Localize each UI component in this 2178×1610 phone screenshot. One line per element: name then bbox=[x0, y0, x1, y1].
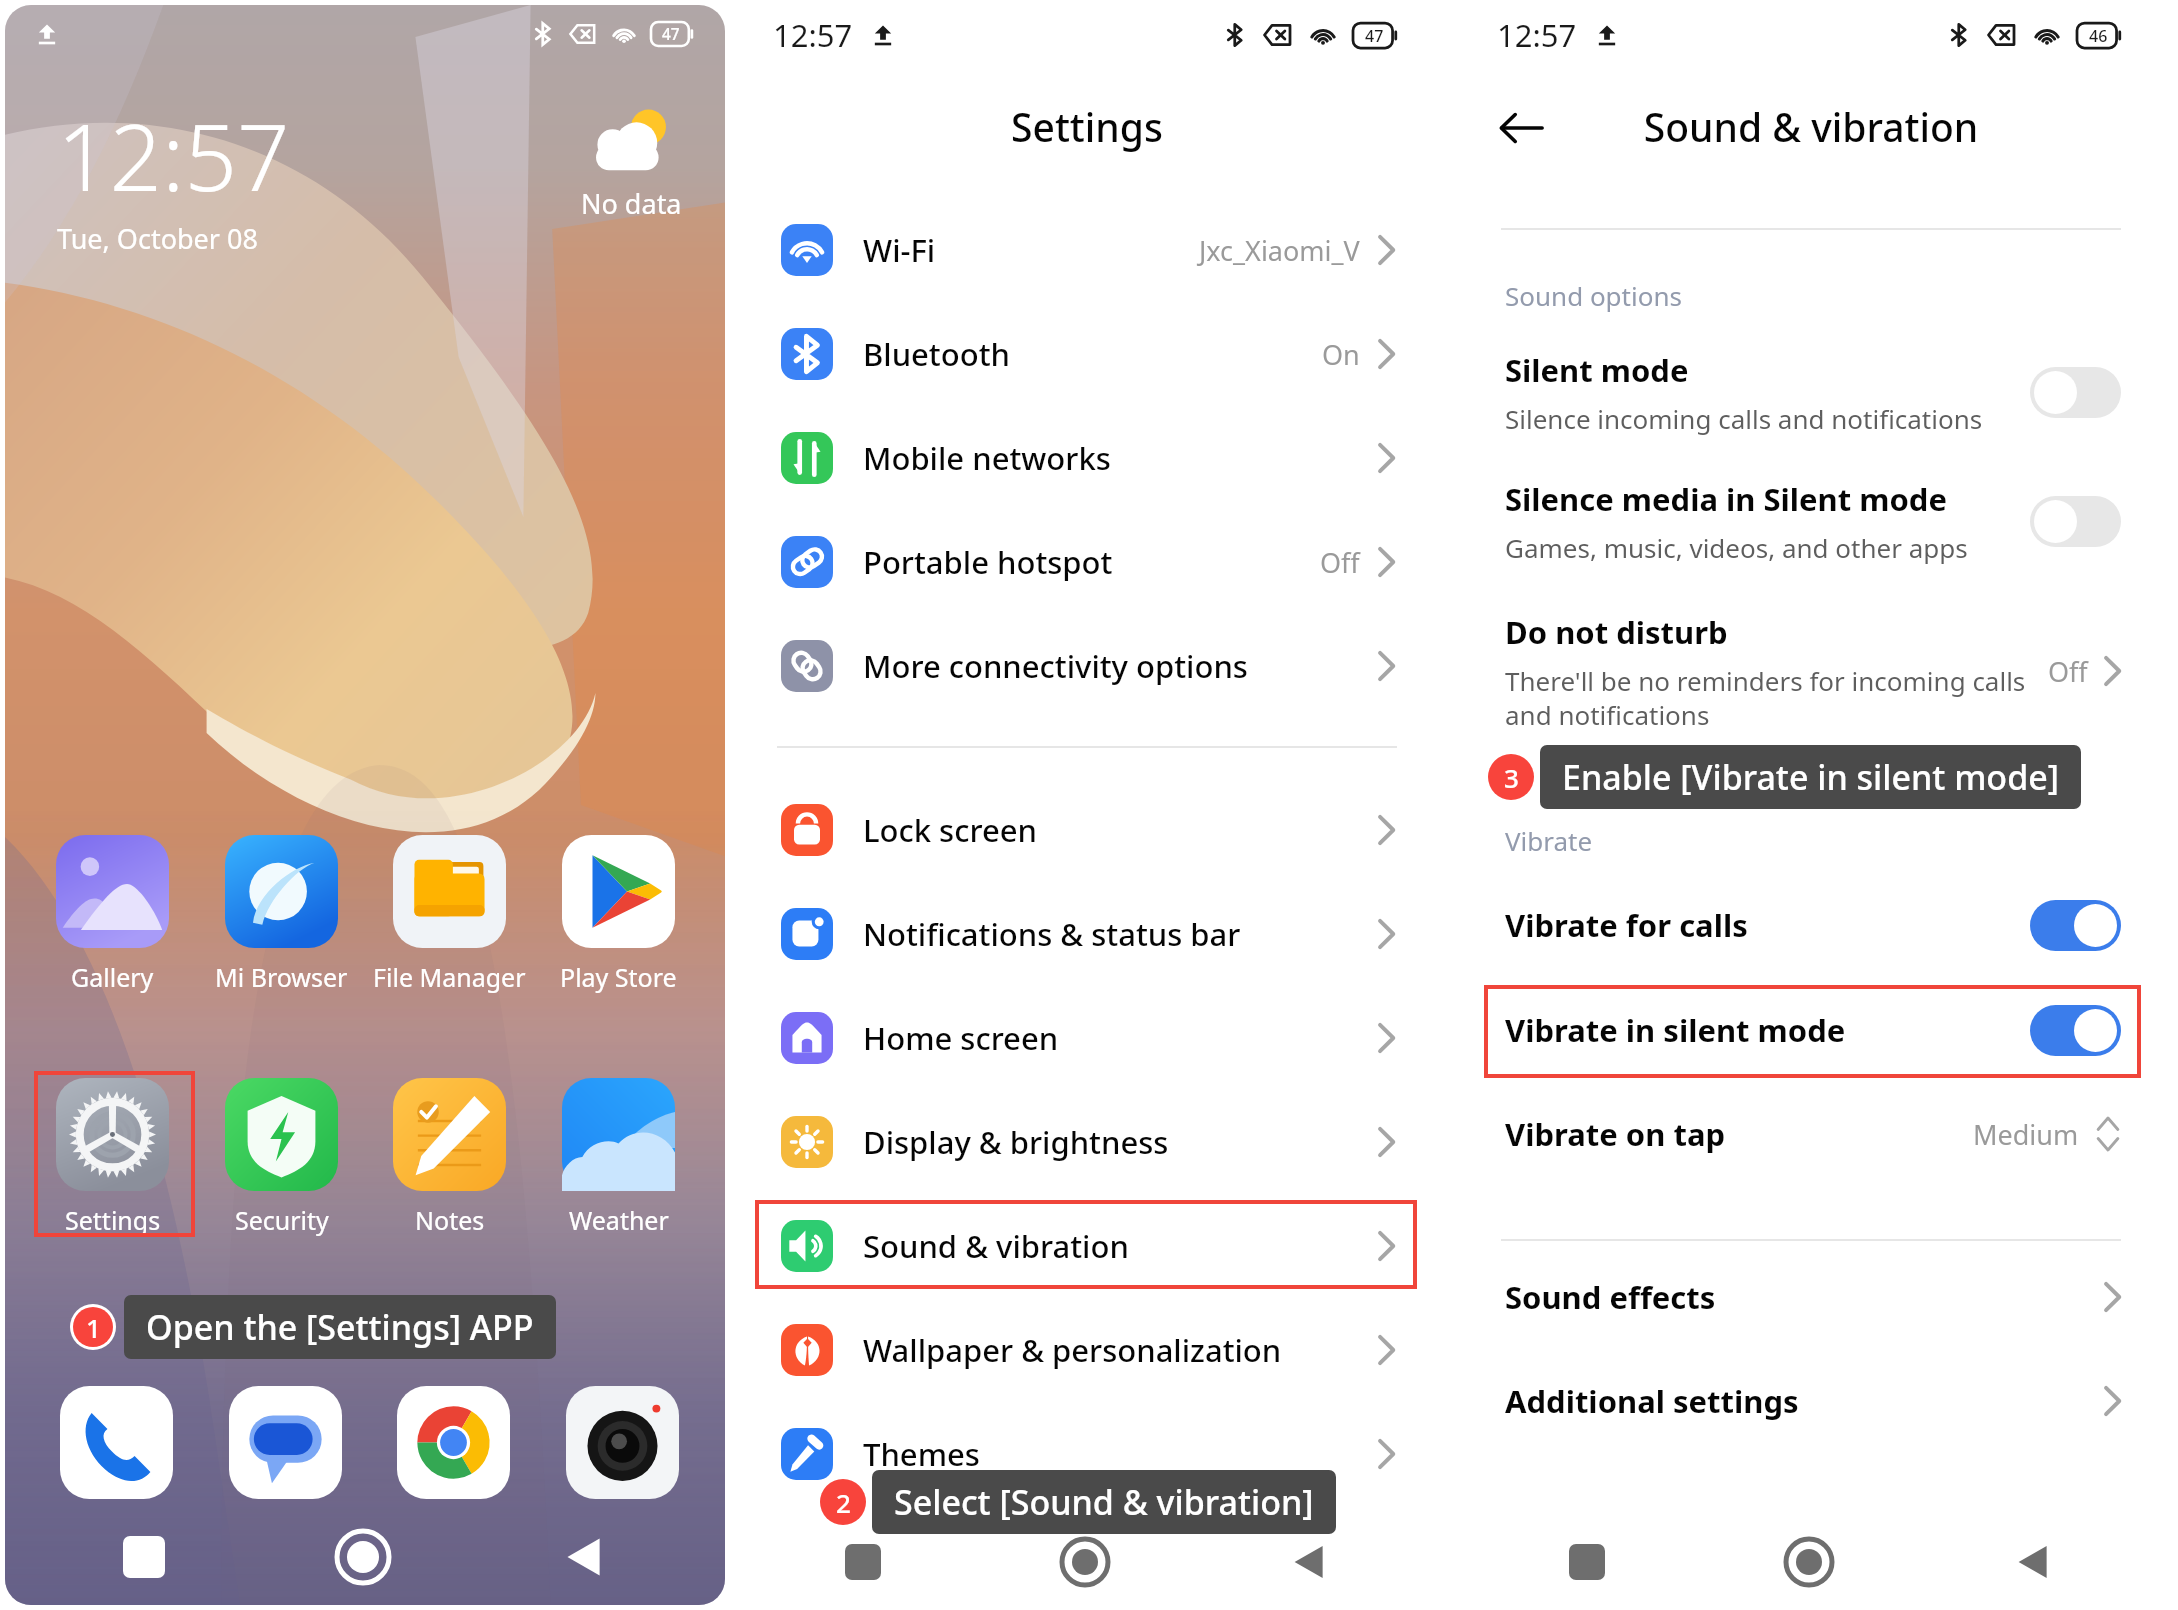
button[interactable]: Vibrate on tap bbox=[1451, 1089, 2171, 1179]
button[interactable]: Silence media in Silent mode bbox=[1451, 456, 2171, 586]
staticText: No data bbox=[581, 185, 682, 222]
staticText: Sound effects bbox=[1505, 1276, 1716, 1318]
staticText: Portable hotspot bbox=[863, 541, 1113, 583]
button[interactable]: Wallpaper & personalization bbox=[727, 1298, 1447, 1402]
staticText: 12:57 bbox=[773, 14, 853, 56]
staticText: Off bbox=[1320, 544, 1360, 581]
staticText: Play Store bbox=[560, 960, 677, 994]
button[interactable]: Play Store bbox=[536, 835, 701, 994]
button[interactable]: Home bbox=[335, 1529, 391, 1585]
staticText: Jxc_Xiaomi_V bbox=[1199, 232, 1360, 269]
staticText: Wi-Fi bbox=[863, 229, 936, 271]
staticText: Home screen bbox=[863, 1017, 1059, 1059]
button[interactable]: Recents bbox=[123, 1536, 165, 1578]
staticText: Vibrate on tap bbox=[1505, 1113, 1726, 1155]
staticText: Notifications & status bar bbox=[863, 913, 1241, 955]
staticText: Display & brightness bbox=[863, 1121, 1169, 1163]
staticText: File Manager bbox=[373, 960, 526, 994]
staticText: Enable [Vibrate in silent mode] bbox=[1562, 754, 2059, 800]
staticText: Select [Sound & vibration] bbox=[894, 1479, 1314, 1525]
staticText: Tue, October 08 bbox=[57, 220, 258, 257]
staticText: Sound & vibration bbox=[863, 1225, 1129, 1267]
staticText: Mi Browser bbox=[215, 960, 348, 994]
staticText: Additional settings bbox=[1505, 1380, 1799, 1422]
button[interactable]: Display & brightness bbox=[727, 1090, 1447, 1194]
button[interactable]: Portable hotspot bbox=[727, 510, 1447, 614]
staticText: Settings bbox=[727, 100, 1447, 153]
button[interactable]: Recents bbox=[845, 1544, 881, 1580]
button[interactable]: Camera bbox=[566, 1386, 679, 1499]
button[interactable]: Home bbox=[1784, 1537, 1834, 1587]
button[interactable]: Recents bbox=[1569, 1544, 1605, 1580]
staticText: 3 bbox=[1504, 760, 1519, 795]
button[interactable]: Silent mode bbox=[1451, 327, 2171, 457]
staticText: Off bbox=[2048, 653, 2088, 690]
staticText: Security bbox=[235, 1203, 329, 1237]
button[interactable]: On bbox=[2030, 1005, 2121, 1056]
button[interactable]: Phone bbox=[60, 1386, 173, 1499]
button[interactable]: Sound & vibration bbox=[727, 1194, 1447, 1298]
button[interactable]: Gallery bbox=[30, 835, 195, 994]
button[interactable]: Vibrate in silent mode bbox=[1451, 985, 2171, 1075]
staticText: 46 bbox=[2089, 25, 2108, 47]
staticText: Silence media in Silent mode bbox=[1505, 478, 1947, 520]
button[interactable]: Off bbox=[2030, 367, 2121, 418]
staticText: Games, music, videos, and other apps bbox=[1505, 530, 1968, 565]
button[interactable]: More connectivity options bbox=[727, 614, 1447, 718]
button[interactable]: Back bbox=[2013, 1542, 2053, 1582]
button[interactable]: Vibrate for calls bbox=[1451, 880, 2171, 970]
staticText: Sound options bbox=[1505, 278, 1682, 313]
staticText: Gallery bbox=[71, 960, 154, 994]
staticText: Weather bbox=[569, 1203, 669, 1237]
staticText: Vibrate for calls bbox=[1505, 904, 1748, 946]
button[interactable]: Sound effects bbox=[1451, 1252, 2171, 1342]
button[interactable]: Back bbox=[1289, 1542, 1329, 1582]
staticText: On bbox=[1322, 336, 1360, 373]
staticText: Silence incoming calls and notifications bbox=[1505, 401, 1983, 436]
staticText: 2 bbox=[836, 1485, 851, 1520]
staticText: Do not disturb bbox=[1505, 611, 1728, 653]
button[interactable]: Themes bbox=[727, 1402, 1447, 1506]
staticText: Notes bbox=[415, 1203, 485, 1237]
staticText: 47 bbox=[662, 24, 680, 45]
button[interactable]: Back bbox=[561, 1534, 607, 1580]
button[interactable]: Lock screen bbox=[727, 778, 1447, 882]
staticText: 12:57 bbox=[1497, 14, 1577, 56]
button[interactable]: Notes bbox=[367, 1078, 532, 1237]
button[interactable]: On bbox=[2030, 900, 2121, 951]
staticText: Vibrate bbox=[1505, 823, 1593, 858]
button[interactable]: Home screen bbox=[727, 986, 1447, 1090]
staticText: There'll be no reminders for incoming ca… bbox=[1505, 663, 2026, 732]
button[interactable]: Bluetooth bbox=[727, 302, 1447, 406]
button[interactable]: Messages bbox=[229, 1386, 342, 1499]
button[interactable]: File Manager bbox=[367, 835, 532, 994]
staticText: Lock screen bbox=[863, 809, 1037, 851]
staticText: Bluetooth bbox=[863, 333, 1010, 375]
staticText: Vibrate in silent mode bbox=[1505, 1009, 1846, 1051]
button[interactable]: Off bbox=[2030, 496, 2121, 547]
staticText: Sound & vibration bbox=[1451, 100, 2171, 153]
button[interactable]: Notifications & status bar bbox=[727, 882, 1447, 986]
staticText: Settings bbox=[65, 1203, 161, 1237]
staticText: Wallpaper & personalization bbox=[863, 1329, 1282, 1371]
staticText: Open the [Settings] APP bbox=[146, 1304, 534, 1350]
button[interactable]: Settings bbox=[30, 1078, 195, 1237]
staticText: More connectivity options bbox=[863, 645, 1248, 687]
staticText: Mobile networks bbox=[863, 437, 1111, 479]
button[interactable]: Do not disturb bbox=[1451, 591, 2171, 751]
staticText: Medium bbox=[1973, 1116, 2079, 1153]
staticText: 12:57 bbox=[57, 93, 290, 218]
button[interactable]: Home bbox=[1060, 1537, 1110, 1587]
button[interactable]: Security bbox=[199, 1078, 364, 1237]
button[interactable]: Additional settings bbox=[1451, 1356, 2171, 1446]
button[interactable]: Chrome bbox=[397, 1386, 510, 1499]
staticText: 1 bbox=[86, 1310, 101, 1345]
button[interactable]: Mobile networks bbox=[727, 406, 1447, 510]
staticText: Silent mode bbox=[1505, 349, 1689, 391]
button[interactable]: Mi Browser bbox=[199, 835, 364, 994]
staticText: Themes bbox=[863, 1433, 980, 1475]
staticText: 47 bbox=[1365, 25, 1384, 47]
button[interactable]: Back bbox=[1491, 98, 1551, 158]
button[interactable]: Weather bbox=[536, 1078, 701, 1237]
button[interactable]: Wi-Fi bbox=[727, 198, 1447, 302]
